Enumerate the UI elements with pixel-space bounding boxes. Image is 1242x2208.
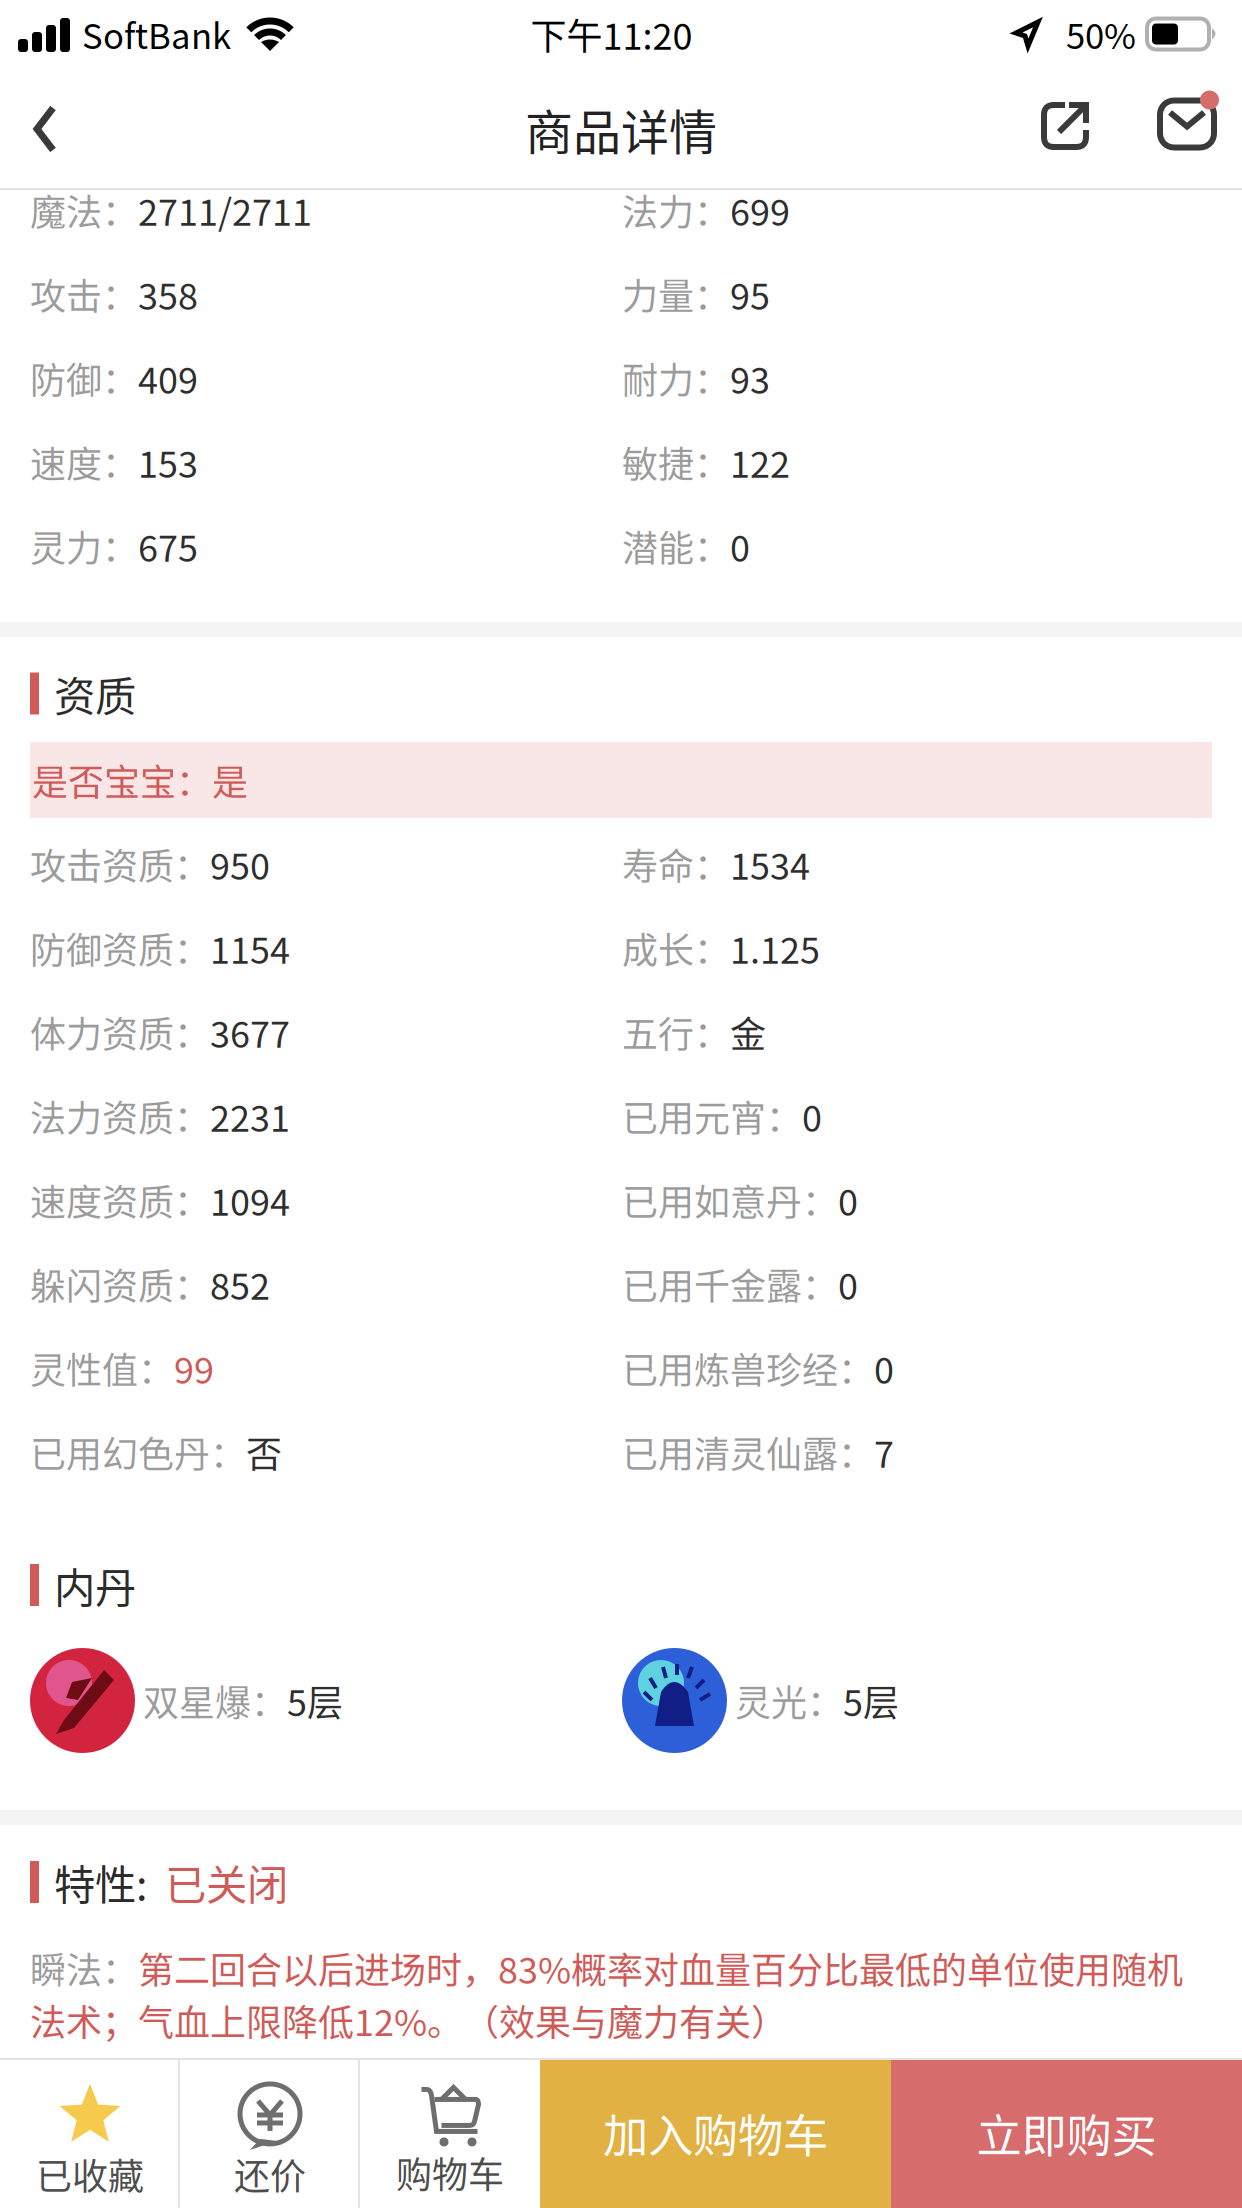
staticText: 已用如意丹：	[622, 1174, 838, 1226]
button[interactable]: 购物车	[360, 2058, 540, 2208]
button[interactable]: 已收藏	[0, 2058, 180, 2208]
staticText: 5层	[843, 1674, 899, 1726]
staticText: 潜能：	[622, 520, 730, 572]
staticText: 双星爆：	[143, 1674, 287, 1726]
staticText: 已收藏	[36, 2148, 144, 2200]
staticText: 122	[730, 436, 790, 488]
staticText: 已用幻色丹：	[30, 1426, 246, 1478]
staticText: 7	[874, 1426, 894, 1478]
staticText: 第二回合以后进场时，83%概率对血量百分比最低的单位使用随机	[138, 1942, 1183, 1994]
staticText: 法力资质：	[30, 1090, 210, 1142]
staticText: 2711/2711	[138, 184, 312, 236]
staticText: 金	[730, 1006, 766, 1058]
staticText: 灵光：	[735, 1674, 843, 1726]
staticText: 93	[730, 352, 770, 404]
staticText: 是否宝宝：是	[32, 754, 248, 806]
button[interactable]: 还价	[180, 2058, 360, 2208]
staticText: 0	[838, 1174, 858, 1226]
staticText: 防御资质：	[30, 922, 210, 974]
staticText: 魔法：	[30, 184, 138, 236]
staticText: 防御：	[30, 352, 138, 404]
staticText: 瞬法：	[30, 1942, 138, 1994]
staticText: 攻击资质：	[30, 838, 210, 890]
staticText: 409	[138, 352, 198, 404]
staticText: 力量：	[622, 268, 730, 320]
staticText: 立即购买	[976, 2100, 1156, 2166]
staticText: 0	[730, 520, 750, 572]
staticText: 950	[210, 838, 270, 890]
staticText: 50%	[1066, 9, 1136, 59]
button[interactable]: 返回	[0, 68, 90, 190]
staticText: 0	[874, 1342, 894, 1394]
staticText: 675	[138, 520, 198, 572]
staticText: 1094	[210, 1174, 290, 1226]
staticText: 体力资质：	[30, 1006, 210, 1058]
staticText: 躲闪资质：	[30, 1258, 210, 1310]
staticText: 速度：	[30, 436, 138, 488]
staticText: 否	[246, 1426, 282, 1478]
staticText: 内丹	[54, 1555, 136, 1615]
staticText: 法力：	[622, 184, 730, 236]
staticText: 1.125	[730, 922, 820, 974]
staticText: 加入购物车	[603, 2100, 828, 2166]
staticText: 已用千金露：	[622, 1258, 838, 1310]
staticText: 寿命：	[622, 838, 730, 890]
staticText: 99	[174, 1342, 214, 1394]
staticText: 灵性值：	[30, 1342, 174, 1394]
staticText: 已用炼兽珍经：	[622, 1342, 874, 1394]
staticText: 0	[838, 1258, 858, 1310]
staticText: 95	[730, 268, 770, 320]
button[interactable]: 消息	[1145, 68, 1242, 190]
staticText: 敏捷：	[622, 436, 730, 488]
staticText: 耐力：	[622, 352, 730, 404]
staticText: 1154	[210, 922, 290, 974]
staticText: 五行：	[622, 1006, 730, 1058]
staticText: 3677	[210, 1006, 290, 1058]
staticText: SoftBank	[82, 9, 231, 59]
staticText: 法术；气血上限降低12%。（效果与魔力有关）	[30, 1994, 787, 2046]
staticText: 已关闭	[165, 1852, 288, 1912]
staticText: 0	[802, 1090, 822, 1142]
staticText: 特性:	[54, 1852, 165, 1912]
staticText: 2231	[210, 1090, 290, 1142]
staticText: 已用元宵：	[622, 1090, 802, 1142]
staticText: 699	[730, 184, 790, 236]
staticText: 速度资质：	[30, 1174, 210, 1226]
staticText: 1534	[730, 838, 810, 890]
staticText: 还价	[234, 2148, 306, 2200]
staticText: 358	[138, 268, 198, 320]
button[interactable]: 分享	[1015, 68, 1145, 190]
staticText: 成长：	[622, 922, 730, 974]
staticText: 购物车	[396, 2146, 504, 2198]
staticText: 攻击：	[30, 268, 138, 320]
staticText: 已用清灵仙露：	[622, 1426, 874, 1478]
staticText: 153	[138, 436, 198, 488]
staticText: 商品详情	[525, 94, 717, 164]
button[interactable]: 加入购物车	[540, 2058, 891, 2208]
staticText: 下午11:20	[530, 8, 692, 60]
staticText: 5层	[287, 1674, 343, 1726]
staticText: 852	[210, 1258, 270, 1310]
staticText: 灵力：	[30, 520, 138, 572]
staticText: 资质	[54, 664, 136, 723]
button[interactable]: 立即购买	[891, 2058, 1242, 2208]
